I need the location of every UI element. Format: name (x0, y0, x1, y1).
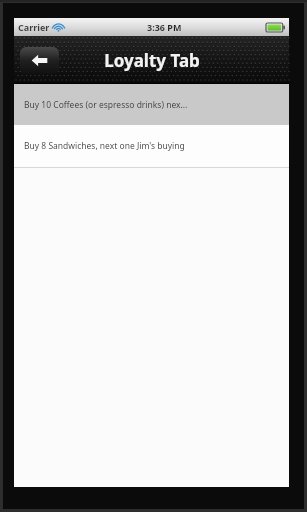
button[interactable]: Buy 10 Coffees (or espresso drinks) nex.… (14, 84, 289, 125)
button[interactable]: Back (20, 47, 59, 74)
staticText: 3:36 PM (147, 21, 182, 33)
other: Wi-Fi signal (53, 22, 64, 32)
other: Battery full (266, 23, 285, 32)
button[interactable]: Buy 8 Sandwiches, next one Jim's buying (14, 125, 289, 167)
staticText: Buy 10 Coffees (or espresso drinks) nex.… (24, 99, 188, 111)
staticText: Loyalty Tab (104, 49, 200, 72)
staticText: Buy 8 Sandwiches, next one Jim's buying (24, 140, 185, 152)
staticText: Carrier (18, 21, 50, 33)
